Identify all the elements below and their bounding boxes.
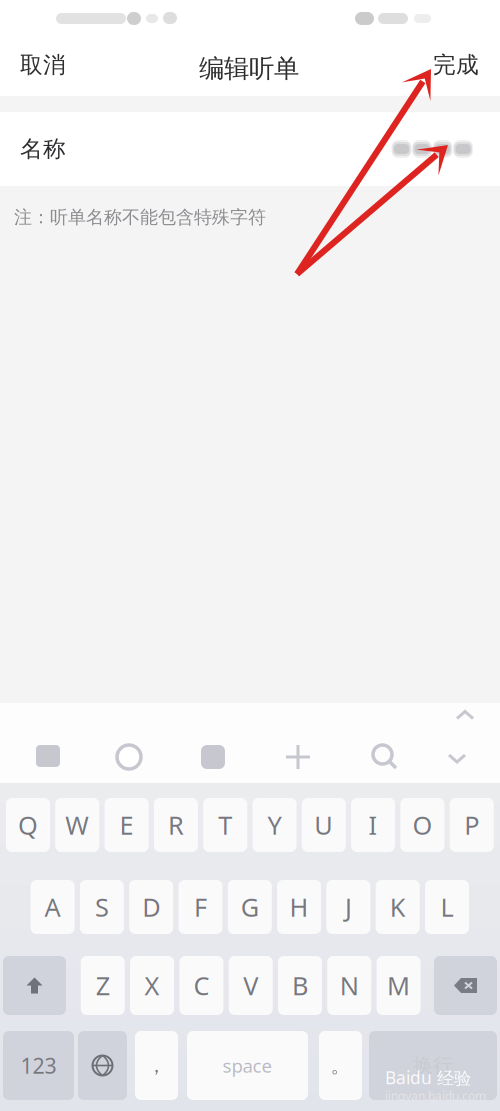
- staticText: D: [142, 890, 160, 924]
- staticText: 完成: [433, 51, 479, 79]
- button[interactable]: B: [0, 0, 44, 59]
- staticText: 。: [330, 1053, 350, 1078]
- staticText: V: [243, 969, 258, 1002]
- staticText: 取消: [20, 51, 66, 79]
- button[interactable]: N: [0, 0, 44, 59]
- staticText: S: [95, 890, 109, 924]
- staticText: 123: [20, 1051, 56, 1080]
- button[interactable]: Shift: [0, 0, 63, 59]
- staticText: X: [145, 969, 160, 1002]
- button[interactable]: 。: [0, 0, 43, 69]
- button[interactable]: Expand: [452, 705, 478, 725]
- button[interactable]: 换行: [0, 0, 128, 69]
- button[interactable]: Keyboard: [30, 739, 66, 773]
- button[interactable]: 完成: [415, 40, 500, 90]
- button[interactable]: Delete: [0, 0, 63, 59]
- staticText: E: [120, 808, 134, 842]
- staticText: U: [314, 808, 333, 842]
- staticText: G: [241, 890, 259, 924]
- staticText: Y: [267, 808, 281, 842]
- button[interactable]: V: [0, 0, 44, 59]
- staticText: L: [440, 890, 453, 924]
- button[interactable]: Search: [367, 739, 403, 775]
- staticText: K: [390, 890, 406, 924]
- staticText: T: [218, 808, 232, 842]
- staticText: M: [387, 969, 410, 1002]
- staticText: W: [65, 808, 89, 842]
- button[interactable]: ，: [0, 0, 43, 69]
- button[interactable]: Hide keyboard: [443, 746, 471, 771]
- staticText: ，: [146, 1053, 166, 1078]
- button[interactable]: Photos: [195, 739, 231, 775]
- staticText: F: [194, 890, 207, 924]
- staticText: Baidu 经验: [385, 1066, 471, 1089]
- button[interactable]: Emoji: [111, 739, 147, 775]
- button[interactable]: Handwriting: [280, 739, 316, 775]
- staticText: R: [168, 808, 184, 842]
- button[interactable]: space: [0, 0, 121, 69]
- staticText: H: [290, 890, 309, 924]
- staticText: Q: [18, 808, 38, 842]
- button[interactable]: X: [0, 0, 44, 59]
- button[interactable]: 名称: [0, 112, 500, 186]
- staticText: C: [193, 969, 209, 1002]
- button[interactable]: 取消: [0, 40, 84, 90]
- staticText: P: [464, 808, 479, 842]
- button[interactable]: Switch keyboard: [0, 0, 49, 69]
- staticText: space: [222, 1053, 272, 1078]
- staticText: B: [292, 969, 308, 1002]
- staticText: A: [45, 890, 61, 924]
- button[interactable]: C: [0, 0, 44, 59]
- staticText: 编辑听单: [199, 53, 299, 84]
- staticText: I: [369, 808, 378, 842]
- staticText: N: [340, 969, 359, 1002]
- staticText: 名称: [20, 135, 66, 163]
- staticText: 注：听单名称不能包含特殊字符: [14, 206, 266, 229]
- staticText: 换行: [413, 1053, 453, 1078]
- button[interactable]: 123: [0, 0, 71, 69]
- staticText: O: [412, 808, 432, 842]
- staticText: jingyan.baidu.com: [385, 1088, 486, 1104]
- staticText: J: [345, 890, 352, 924]
- button[interactable]: M: [0, 0, 44, 59]
- staticText: Z: [96, 969, 110, 1002]
- button[interactable]: Z: [0, 0, 44, 59]
